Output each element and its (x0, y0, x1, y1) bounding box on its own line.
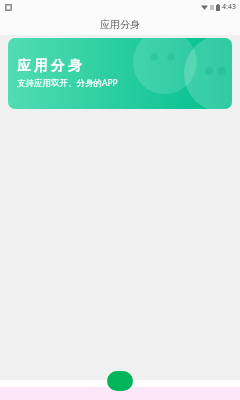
button[interactable]: Add (107, 371, 133, 391)
staticText: 应 用 分 身 (17, 56, 82, 74)
staticText: 应用分身 (100, 18, 140, 31)
staticText: 4:43 (222, 2, 236, 12)
button[interactable]: 应 用 分 身 (8, 38, 232, 109)
staticText: 支持应用双开、分身的APP (17, 77, 118, 89)
